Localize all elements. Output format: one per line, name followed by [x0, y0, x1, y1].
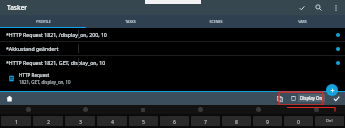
button[interactable]: Display On	[287, 92, 328, 104]
button[interactable]: *Akkustand geändert	[0, 42, 345, 55]
staticText: TASKS	[125, 19, 136, 24]
button[interactable]: 6	[160, 116, 189, 126]
staticText: 7	[204, 118, 207, 125]
button[interactable]: Nav 2	[114, 105, 171, 114]
staticText: Tasker	[7, 3, 28, 12]
button[interactable]: Home	[4, 93, 15, 104]
button[interactable]: Nav 0	[0, 105, 57, 114]
button[interactable]: Copy	[274, 93, 285, 104]
button[interactable]: 9	[253, 116, 282, 126]
staticText: *HTTP Request 1821, /display_on, 200, 10	[6, 31, 107, 38]
staticText: PROFILE	[36, 19, 51, 24]
staticText: 4	[111, 118, 114, 125]
staticText: 1	[15, 118, 18, 125]
staticText: 3	[79, 118, 82, 125]
button[interactable]: Nav 4	[229, 105, 287, 114]
button[interactable]: SCENES	[173, 15, 259, 28]
staticText: 8	[235, 118, 238, 125]
button[interactable]: PROFILE	[0, 15, 87, 28]
button[interactable]: 1	[1, 116, 31, 126]
staticText: 0	[297, 118, 300, 125]
button[interactable]: 3	[65, 116, 95, 126]
button[interactable]: Nav 1	[57, 105, 114, 114]
staticText: Del	[326, 118, 333, 124]
button[interactable]: Del	[315, 116, 344, 126]
button[interactable]: VARS	[259, 15, 345, 28]
button[interactable]: 4	[97, 116, 127, 126]
button[interactable]: TASKS	[87, 15, 173, 28]
button[interactable]: Add	[326, 84, 338, 96]
staticText: *Akkustand geändert	[6, 45, 59, 52]
staticText: 1821, GET, display_on, 10	[19, 79, 71, 85]
button[interactable]: 5	[129, 116, 158, 126]
button[interactable]: 8	[222, 116, 251, 126]
staticText: HTTP Request	[19, 72, 50, 78]
button[interactable]: 0	[284, 116, 313, 126]
button[interactable]: Nav 5	[287, 105, 345, 114]
button[interactable]: Search	[313, 2, 324, 13]
button[interactable]: Accept	[296, 2, 307, 13]
button[interactable]: Nav 3	[171, 105, 229, 114]
staticText: Display On	[300, 95, 323, 101]
button[interactable]: *HTTP Request 1821, GET, display_on, 10	[0, 56, 345, 69]
staticText: VARS	[298, 19, 307, 24]
staticText: 5	[142, 118, 145, 125]
staticText: 6	[173, 118, 176, 125]
staticText: 9	[266, 118, 269, 125]
button[interactable]: HTTP Request	[0, 69, 345, 87]
button[interactable]: Done	[331, 93, 342, 104]
button[interactable]: 7	[191, 116, 220, 126]
button[interactable]: 2	[33, 116, 63, 126]
button[interactable]: *HTTP Request 1821, /display_on, 200, 10	[0, 28, 345, 41]
button[interactable]: More options	[330, 2, 341, 13]
staticText: *HTTP Request 1821, GET, display_on, 10	[6, 59, 106, 66]
staticText: 2	[47, 118, 50, 125]
staticText: SCENES	[209, 19, 223, 24]
